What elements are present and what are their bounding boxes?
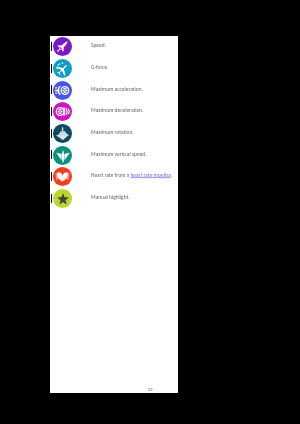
button[interactable]: Maximum vertical speed. (53, 146, 147, 165)
staticText: Maximum vertical speed. (91, 151, 147, 158)
other: Maximum rotation. (53, 124, 72, 143)
button[interactable]: Manual highlight. (53, 189, 130, 208)
staticText: Heart rate from a heart rate monitor. (91, 172, 173, 179)
other: Maximum acceleration. (53, 81, 72, 100)
staticText: Manual highlight. (91, 194, 130, 201)
button[interactable]: Speed. (53, 37, 106, 56)
staticText: 22 (148, 387, 153, 393)
button[interactable]: Maximum deceleration. (53, 102, 144, 121)
staticText: G-force. (91, 64, 109, 71)
button[interactable]: Maximum rotation. (53, 124, 134, 143)
other: Speed. (53, 37, 72, 56)
other: Maximum deceleration. (53, 102, 72, 121)
button[interactable]: Maximum acceleration. (53, 81, 143, 100)
other: Maximum vertical speed. (53, 146, 72, 165)
button[interactable]: G-force. (53, 59, 109, 78)
other: G-force. (53, 59, 72, 78)
other: Heart rate from a heart rate monitor. (53, 167, 72, 186)
staticText: Maximum acceleration. (91, 86, 143, 93)
staticText: Speed. (91, 42, 106, 49)
button[interactable]: Heart rate from a heart rate monitor. (53, 167, 173, 186)
staticText: Maximum deceleration. (91, 107, 144, 114)
staticText: Maximum rotation. (91, 129, 134, 136)
other: Manual highlight. (53, 189, 72, 208)
